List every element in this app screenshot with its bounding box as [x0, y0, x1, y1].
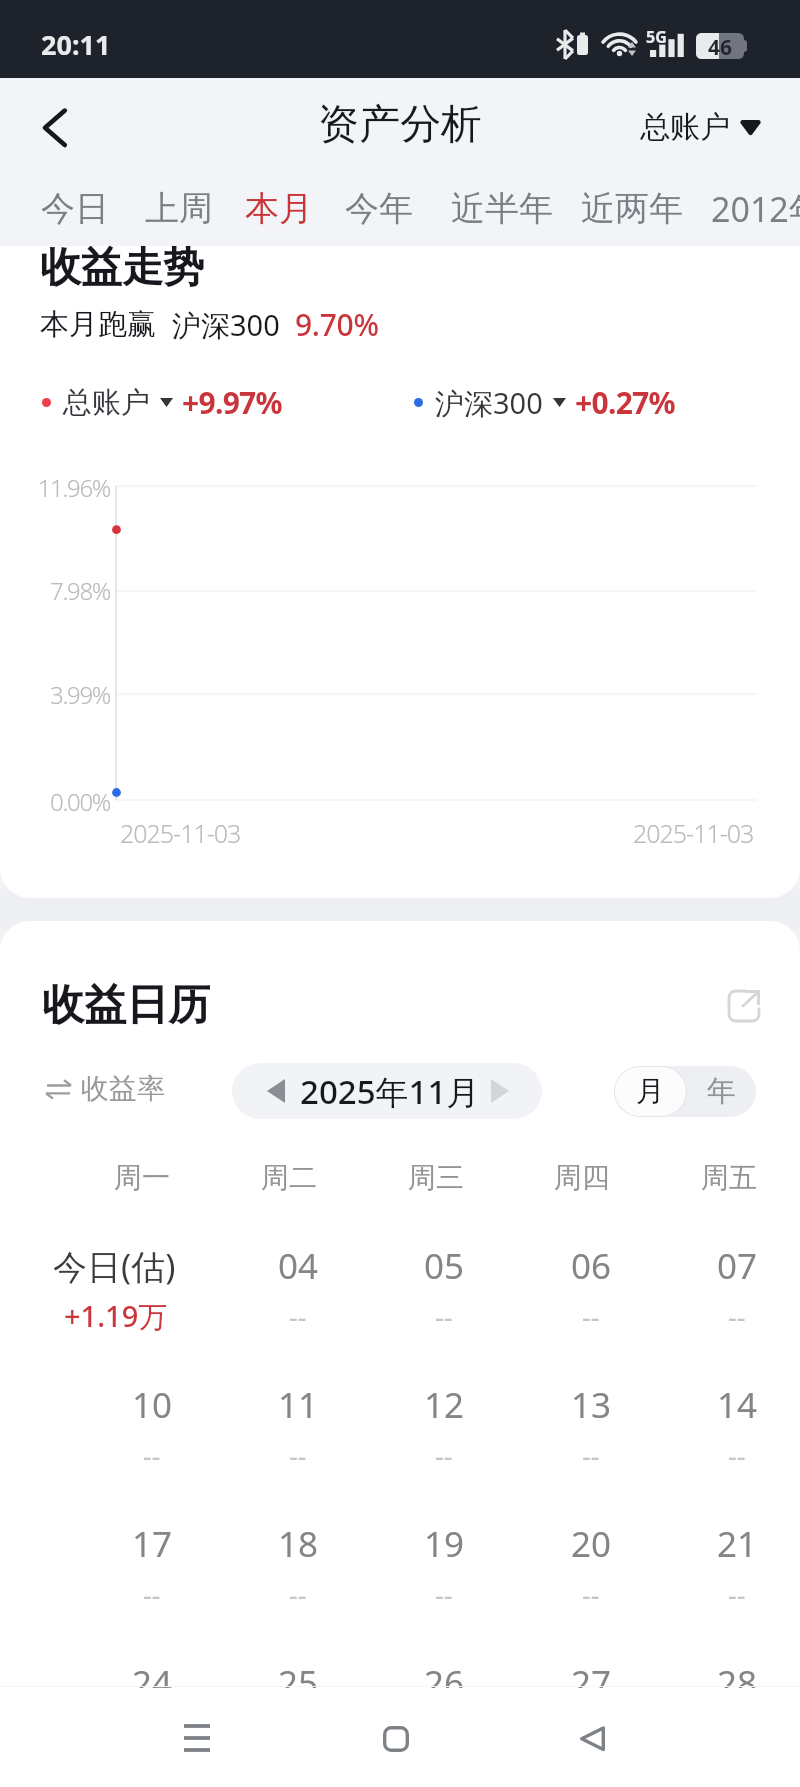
button[interactable]: 21: [647, 1514, 800, 1574]
button[interactable]: 上周: [131, 173, 227, 246]
button[interactable]: 13: [501, 1375, 681, 1435]
button[interactable]: 17: [62, 1514, 242, 1574]
button[interactable]: 周三: [346, 1147, 526, 1207]
staticText: 年: [707, 1073, 736, 1110]
staticText: --: [435, 1437, 453, 1474]
staticText: 总账户: [640, 108, 730, 146]
staticText: 10: [132, 1381, 173, 1429]
staticText: --: [728, 1437, 746, 1474]
button[interactable]: 今日: [27, 173, 123, 246]
staticText: 12: [424, 1381, 465, 1429]
staticText: --: [289, 1576, 307, 1613]
button[interactable]: +1.19万: [26, 1286, 206, 1346]
button[interactable]: 04: [208, 1236, 388, 1296]
staticText: 今年: [345, 187, 413, 230]
button[interactable]: 11: [208, 1375, 388, 1435]
button[interactable]: 沪深300: [414, 376, 675, 429]
button[interactable]: 24: [62, 1653, 242, 1688]
staticText: 06: [571, 1242, 612, 1290]
button[interactable]: --: [647, 1286, 800, 1346]
button[interactable]: 07: [647, 1236, 800, 1296]
staticText: 04: [278, 1242, 319, 1290]
staticText: 本月: [245, 187, 313, 230]
button[interactable]: 28: [647, 1653, 800, 1688]
staticText: +9.97%: [182, 382, 282, 423]
staticText: 18: [278, 1520, 319, 1568]
staticText: 收益率: [81, 1071, 165, 1106]
button[interactable]: 12: [354, 1375, 534, 1435]
button[interactable]: 14: [647, 1375, 800, 1435]
button[interactable]: 周一: [52, 1147, 232, 1207]
staticText: 周二: [261, 1160, 317, 1195]
staticText: 11.96%: [0, 471, 110, 504]
staticText: 收益走势: [40, 246, 204, 294]
staticText: 7.98%: [0, 574, 110, 607]
button[interactable]: 25: [208, 1653, 388, 1688]
button[interactable]: --: [647, 1564, 800, 1624]
button[interactable]: Home: [343, 1688, 423, 1787]
staticText: --: [582, 1437, 600, 1474]
button[interactable]: 19: [354, 1514, 534, 1574]
button[interactable]: Previous month: [250, 1063, 300, 1119]
staticText: 上周: [145, 187, 213, 230]
button[interactable]: 今日(估): [24, 1236, 204, 1296]
button[interactable]: 05: [354, 1236, 534, 1296]
staticText: 20: [571, 1520, 612, 1568]
button[interactable]: 收益率: [44, 1071, 165, 1106]
staticText: 近两年: [581, 187, 683, 230]
staticText: 46: [708, 33, 733, 62]
staticText: 20:11: [41, 26, 111, 63]
button[interactable]: 月: [615, 1067, 686, 1116]
button[interactable]: 总账户: [42, 376, 282, 429]
staticText: 9.70%: [295, 304, 379, 345]
button[interactable]: 20: [501, 1514, 681, 1574]
button[interactable]: 26: [354, 1653, 534, 1688]
staticText: 25: [278, 1659, 319, 1688]
button[interactable]: 06: [501, 1236, 681, 1296]
staticText: --: [143, 1437, 161, 1474]
staticText: 19: [424, 1520, 465, 1568]
button[interactable]: 本月: [231, 173, 327, 246]
button[interactable]: 周四: [492, 1147, 672, 1207]
button[interactable]: Open in new window: [714, 974, 776, 1036]
button[interactable]: 年: [687, 1066, 756, 1117]
staticText: --: [728, 1576, 746, 1613]
staticText: --: [582, 1298, 600, 1335]
staticText: 今日(估): [53, 1243, 176, 1289]
staticText: 资产分析: [318, 99, 482, 151]
staticText: 26: [424, 1659, 465, 1688]
button[interactable]: Back: [10, 78, 100, 173]
staticText: 27: [571, 1659, 612, 1688]
button[interactable]: 周二: [199, 1147, 379, 1207]
button[interactable]: --: [647, 1425, 800, 1485]
staticText: 周三: [408, 1160, 464, 1195]
staticText: 周四: [554, 1160, 610, 1195]
staticText: --: [728, 1298, 746, 1335]
staticText: 5G: [646, 26, 667, 48]
staticText: 07: [717, 1242, 758, 1290]
staticText: 3.99%: [0, 678, 110, 711]
button[interactable]: 2012年: [697, 173, 800, 246]
button[interactable]: 10: [62, 1375, 242, 1435]
button[interactable]: 18: [208, 1514, 388, 1574]
button[interactable]: 近两年: [567, 173, 697, 246]
button[interactable]: 周五: [639, 1147, 800, 1207]
button[interactable]: 近半年: [437, 173, 567, 246]
button[interactable]: 今年: [331, 173, 427, 246]
button[interactable]: 27: [501, 1653, 681, 1688]
button[interactable]: Back: [540, 1688, 620, 1787]
button[interactable]: Next month: [475, 1063, 525, 1119]
button[interactable]: Select account: [628, 78, 778, 173]
button[interactable]: Recent apps: [157, 1688, 237, 1787]
